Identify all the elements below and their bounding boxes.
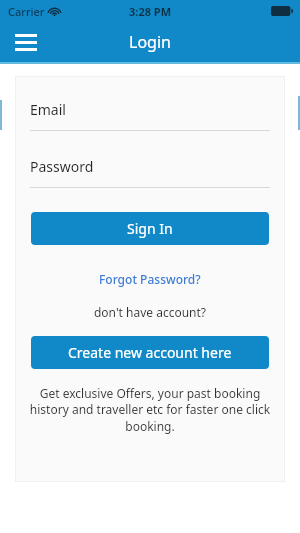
button[interactable]: Forgot Password? (15, 271, 285, 287)
staticText: Email (30, 100, 66, 119)
staticText: Sign In (127, 219, 173, 238)
button[interactable]: Menu (11, 27, 41, 57)
staticText: Forgot Password? (99, 271, 201, 287)
staticText: 3:28 PM (129, 4, 172, 19)
staticText: Carrier (8, 4, 45, 19)
staticText: don't have account? (15, 304, 285, 320)
staticText: Password (30, 157, 94, 176)
button[interactable]: Sign In (31, 212, 269, 245)
button[interactable]: Email (15, 100, 285, 131)
staticText: Get exclusive Offers, your past booking … (29, 385, 271, 435)
button[interactable]: Password (15, 157, 285, 188)
staticText: Login (129, 31, 171, 53)
staticText: Create new account here (68, 343, 232, 362)
button[interactable]: Create new account here (31, 336, 269, 369)
